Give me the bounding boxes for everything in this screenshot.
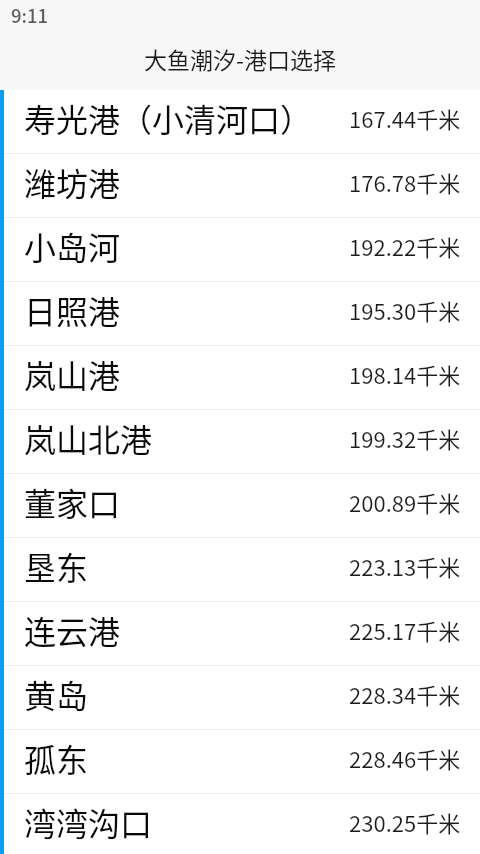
button[interactable]: 岚山港 — [0, 346, 480, 410]
button[interactable]: 孤东 — [0, 730, 480, 794]
button[interactable]: 岚山北港 — [0, 410, 480, 474]
staticText: 湾湾沟口 — [24, 799, 153, 845]
staticText: 200.89千米 — [349, 486, 461, 518]
button[interactable]: 湾湾沟口 — [0, 794, 480, 854]
staticText: 董家口 — [24, 479, 121, 525]
staticText: 9:11 — [11, 2, 49, 29]
staticText: 连云港 — [24, 607, 121, 653]
button[interactable]: 垦东 — [0, 538, 480, 602]
staticText: 日照港 — [24, 287, 121, 333]
staticText: 岚山北港 — [24, 415, 153, 461]
button[interactable]: 董家口 — [0, 474, 480, 538]
button[interactable]: 连云港 — [0, 602, 480, 666]
staticText: 寿光港（小清河口） — [24, 95, 313, 141]
staticText: 167.44千米 — [349, 102, 461, 134]
staticText: 潍坊港 — [24, 159, 121, 205]
staticText: 230.25千米 — [349, 806, 461, 838]
staticText: 小岛河 — [24, 223, 121, 269]
staticText: 垦东 — [24, 543, 89, 589]
staticText: 228.34千米 — [349, 678, 461, 710]
button[interactable]: 黄岛 — [0, 666, 480, 730]
staticText: 199.32千米 — [349, 422, 461, 454]
staticText: 198.14千米 — [349, 358, 461, 390]
button[interactable]: 小岛河 — [0, 218, 480, 282]
button[interactable]: 潍坊港 — [0, 154, 480, 218]
staticText: 225.17千米 — [349, 614, 461, 646]
staticText: 195.30千米 — [349, 294, 461, 326]
staticText: 176.78千米 — [349, 166, 461, 198]
button[interactable]: 日照港 — [0, 282, 480, 346]
staticText: 192.22千米 — [349, 230, 461, 262]
button[interactable]: 寿光港（小清河口） — [0, 90, 480, 154]
staticText: 223.13千米 — [349, 550, 461, 582]
staticText: 228.46千米 — [349, 742, 461, 774]
staticText: 岚山港 — [24, 351, 121, 397]
staticText: 孤东 — [24, 735, 89, 781]
staticText: 大鱼潮汐-港口选择 — [144, 42, 336, 75]
staticText: 黄岛 — [24, 671, 89, 717]
